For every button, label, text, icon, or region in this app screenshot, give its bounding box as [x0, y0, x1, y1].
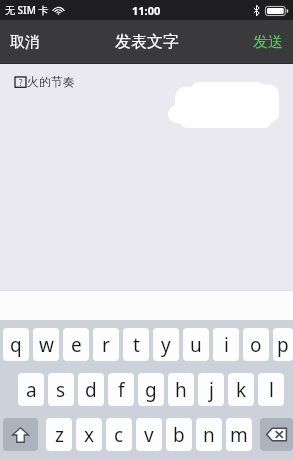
staticText: a: [26, 377, 37, 403]
button[interactable]: t: [123, 328, 149, 361]
button[interactable]: h: [168, 373, 194, 406]
staticText: q: [10, 332, 22, 358]
button[interactable]: w: [33, 328, 59, 361]
staticText: e: [71, 332, 82, 358]
button[interactable]: i: [213, 328, 239, 361]
staticText: u: [190, 332, 202, 358]
staticText: d: [85, 377, 97, 403]
button[interactable]: Shift: [3, 418, 38, 451]
staticText: ?: [19, 77, 23, 88]
staticText: p: [277, 332, 289, 358]
staticText: s: [56, 377, 66, 403]
staticText: c: [114, 422, 124, 448]
button[interactable]: 发送: [243, 25, 293, 60]
staticText: 发表文字: [115, 32, 179, 52]
staticText: 火的节奏: [27, 74, 75, 89]
button[interactable]: x: [76, 418, 102, 451]
button[interactable]: m: [226, 418, 252, 451]
button[interactable]: 取消: [0, 25, 50, 60]
button[interactable]: a: [18, 373, 44, 406]
button[interactable]: z: [46, 418, 72, 451]
button[interactable]: e: [63, 328, 89, 361]
button[interactable]: d: [78, 373, 104, 406]
staticText: v: [144, 422, 154, 448]
button[interactable]: r: [93, 328, 119, 361]
staticText: i: [224, 332, 229, 358]
staticText: g: [145, 377, 157, 403]
staticText: y: [161, 332, 171, 358]
button[interactable]: u: [183, 328, 209, 361]
staticText: m: [230, 422, 248, 448]
staticText: x: [84, 422, 95, 448]
staticText: o: [250, 332, 262, 358]
staticText: n: [203, 422, 215, 448]
staticText: w: [39, 332, 54, 358]
button[interactable]: f: [108, 373, 134, 406]
button[interactable]: Backspace: [260, 418, 293, 451]
button[interactable]: g: [138, 373, 164, 406]
staticText: 11:00: [132, 3, 161, 18]
staticText: 无 SIM 卡: [5, 3, 49, 17]
staticText: j: [209, 377, 214, 403]
staticText: l: [269, 377, 274, 403]
button[interactable]: s: [48, 373, 74, 406]
staticText: 取消: [10, 33, 40, 52]
button[interactable]: l: [258, 373, 284, 406]
staticText: f: [118, 377, 125, 403]
button[interactable]: b: [166, 418, 192, 451]
button[interactable]: o: [243, 328, 269, 361]
button[interactable]: j: [198, 373, 224, 406]
staticText: h: [175, 377, 187, 403]
staticText: t: [133, 332, 140, 358]
button[interactable]: y: [153, 328, 179, 361]
button[interactable]: p: [273, 328, 293, 361]
button[interactable]: n: [196, 418, 222, 451]
button[interactable]: q: [3, 328, 29, 361]
staticText: 发送: [253, 33, 283, 52]
button[interactable]: ?: [0, 64, 293, 290]
staticText: r: [102, 332, 110, 358]
button[interactable]: k: [228, 373, 254, 406]
staticText: z: [55, 422, 64, 448]
staticText: k: [236, 377, 247, 403]
button[interactable]: c: [106, 418, 132, 451]
button[interactable]: v: [136, 418, 162, 451]
staticText: b: [173, 422, 185, 448]
